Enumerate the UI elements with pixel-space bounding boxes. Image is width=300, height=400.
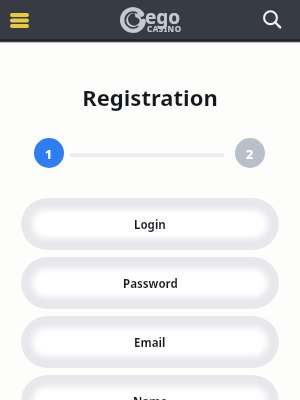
staticText: 2: [246, 146, 254, 163]
staticText: ego: [145, 4, 181, 30]
staticText: Registration: [0, 82, 300, 112]
button[interactable]: 2: [235, 138, 265, 168]
button[interactable]: Search: [264, 0, 300, 40]
button[interactable]: Name: [21, 375, 279, 400]
staticText: CASINO: [147, 23, 182, 34]
button[interactable]: Login: [21, 198, 279, 250]
button[interactable]: 1: [34, 138, 64, 168]
button[interactable]: Email: [21, 316, 279, 368]
staticText: Password: [123, 276, 178, 292]
staticText: Email: [134, 335, 166, 351]
staticText: Name: [133, 394, 168, 400]
staticText: 1: [45, 146, 53, 163]
button[interactable]: Open navigation menu: [1, 0, 37, 40]
button[interactable]: Password: [21, 257, 279, 309]
staticText: Login: [134, 217, 166, 233]
